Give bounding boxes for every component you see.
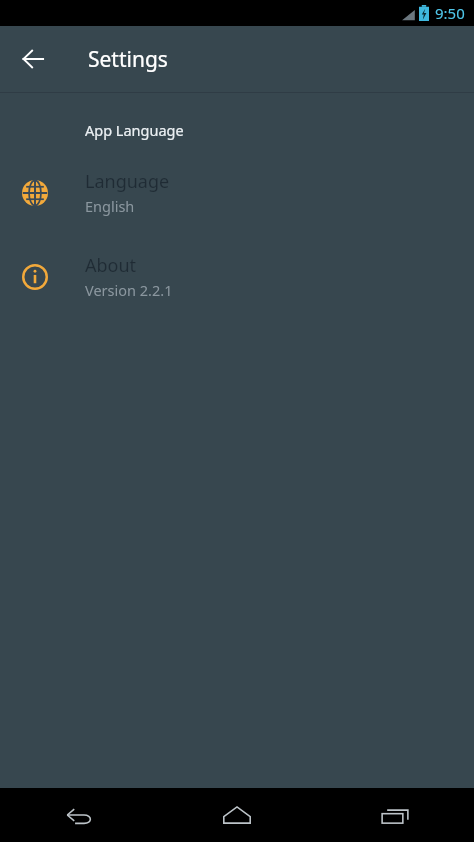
button[interactable]: Recent apps (316, 788, 474, 842)
button[interactable]: Navigate up (11, 37, 55, 81)
staticText: Language (85, 169, 170, 194)
staticText: Settings (88, 45, 168, 74)
staticText: English (85, 196, 135, 216)
staticText: Version 2.2.1 (85, 280, 173, 300)
button[interactable]: Home (158, 788, 316, 842)
staticText: 9:50 (435, 3, 465, 23)
staticText: App Language (85, 120, 184, 140)
button[interactable]: Back (0, 788, 158, 842)
staticText: About (85, 253, 137, 278)
button[interactable]: Language (0, 164, 474, 221)
button[interactable]: About (0, 248, 474, 305)
